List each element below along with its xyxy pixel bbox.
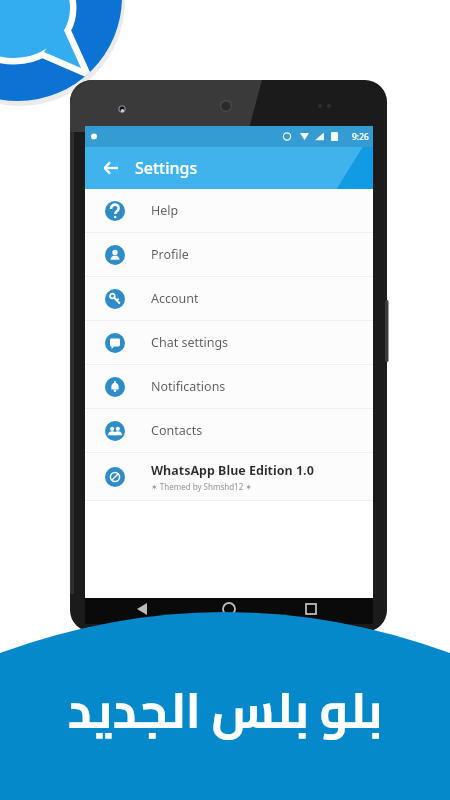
button[interactable]: Help [85, 189, 373, 233]
staticText: Notifications [151, 378, 226, 395]
staticText: 9:26 [352, 131, 369, 143]
button[interactable]: WhatsApp Blue Edition 1.0 [85, 453, 373, 501]
button[interactable]: Chat settings [85, 321, 373, 365]
staticText: Help [151, 202, 179, 219]
button[interactable]: Contacts [85, 409, 373, 453]
staticText: WhatsApp Blue Edition 1.0 [151, 462, 314, 479]
staticText: بلو بلس الجديد [0, 664, 450, 756]
button[interactable]: Notifications [85, 365, 373, 409]
staticText: Chat settings [151, 334, 229, 351]
staticText: ✶ Themed by Shmshd12 ✶ [151, 481, 253, 492]
button[interactable]: Back [85, 147, 373, 189]
staticText: Contacts [151, 422, 203, 439]
staticText: Profile [151, 246, 189, 263]
button[interactable]: Account [85, 277, 373, 321]
staticText: Account [151, 290, 199, 307]
staticText: Settings [135, 157, 198, 179]
button[interactable]: Back [101, 157, 123, 179]
button[interactable]: Profile [85, 233, 373, 277]
